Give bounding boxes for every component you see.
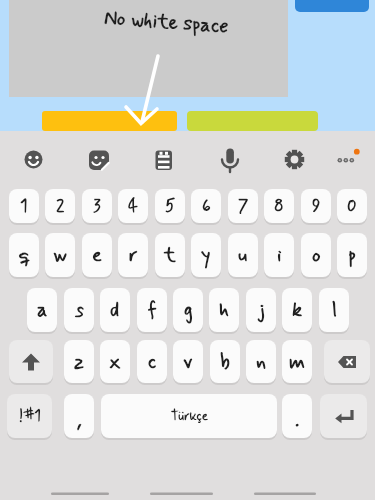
button[interactable]: m xyxy=(282,340,312,383)
button[interactable]: a xyxy=(27,288,57,332)
staticText: p xyxy=(348,242,357,268)
button[interactable]: !#1 xyxy=(7,394,52,438)
staticText: Türkçe xyxy=(171,408,208,424)
button[interactable]: f xyxy=(137,288,167,332)
button[interactable]: y xyxy=(191,233,221,277)
button[interactable]: u xyxy=(228,233,258,277)
button[interactable] xyxy=(320,394,367,438)
button[interactable]: e xyxy=(82,233,112,277)
button[interactable]: 5 xyxy=(155,189,185,223)
staticText: i xyxy=(277,242,282,268)
staticText: 2 xyxy=(56,195,65,217)
staticText: s xyxy=(75,297,84,323)
button[interactable]: n xyxy=(246,340,276,383)
staticText: g xyxy=(184,297,193,323)
staticText: c xyxy=(148,349,157,375)
staticText: z xyxy=(74,349,84,375)
button[interactable]: h xyxy=(209,288,239,332)
button[interactable]: d xyxy=(100,288,130,332)
staticText: No white space xyxy=(103,5,230,39)
button[interactable] xyxy=(9,340,53,383)
button[interactable]: 6 xyxy=(191,189,221,223)
staticText: j xyxy=(258,297,265,323)
button[interactable]: 3 xyxy=(82,189,112,223)
staticText: e xyxy=(92,242,102,268)
staticText: , xyxy=(77,406,82,434)
staticText: m xyxy=(289,349,305,375)
staticText: 9 xyxy=(312,195,321,217)
staticText: y xyxy=(201,242,211,268)
staticText: 7 xyxy=(238,195,249,217)
button[interactable]: s xyxy=(64,288,94,332)
staticText: r xyxy=(129,242,138,268)
staticText: b xyxy=(220,349,230,375)
staticText: 6 xyxy=(202,195,211,217)
button[interactable]: p xyxy=(337,233,367,277)
button[interactable]: , xyxy=(64,394,94,438)
button[interactable]: r xyxy=(118,233,148,277)
staticText: d xyxy=(110,297,120,323)
button[interactable]: 8 xyxy=(264,189,294,223)
staticText: !#1 xyxy=(19,406,41,426)
button[interactable]: Türkçe xyxy=(101,394,277,438)
button[interactable]: 7 xyxy=(228,189,258,223)
button[interactable]: q xyxy=(9,233,39,277)
staticText: 0 xyxy=(347,195,357,217)
button[interactable]: l xyxy=(319,288,349,332)
button[interactable]: c xyxy=(137,340,167,383)
staticText: h xyxy=(219,297,229,323)
staticText: 8 xyxy=(274,195,284,217)
button[interactable] xyxy=(324,340,370,383)
staticText: 4 xyxy=(128,195,138,217)
button[interactable]: . xyxy=(282,394,312,438)
staticText: l xyxy=(332,297,337,323)
button[interactable]: x xyxy=(100,340,130,383)
button[interactable]: k xyxy=(282,288,312,332)
staticText: x xyxy=(109,349,121,375)
staticText: k xyxy=(292,297,303,323)
staticText: v xyxy=(183,349,193,375)
staticText: 1 xyxy=(20,195,28,217)
button[interactable]: w xyxy=(45,233,75,277)
staticText: . xyxy=(295,406,300,434)
staticText: u xyxy=(238,242,248,268)
button[interactable]: g xyxy=(173,288,203,332)
button[interactable]: v xyxy=(173,340,203,383)
staticText: a xyxy=(37,297,48,323)
button[interactable]: o xyxy=(301,233,331,277)
button[interactable]: b xyxy=(210,340,240,383)
staticText: t xyxy=(164,242,176,268)
button[interactable]: 4 xyxy=(118,189,148,223)
button[interactable]: 2 xyxy=(45,189,75,223)
button[interactable]: 1 xyxy=(9,189,39,223)
staticText: o xyxy=(312,242,321,268)
staticText: 5 xyxy=(165,195,176,217)
button[interactable]: i xyxy=(264,233,294,277)
staticText: q xyxy=(19,242,30,268)
button[interactable]: j xyxy=(246,288,276,332)
button[interactable]: 9 xyxy=(301,189,331,223)
staticText: f xyxy=(148,297,157,323)
button[interactable]: z xyxy=(64,340,94,383)
button[interactable]: t xyxy=(155,233,185,277)
button[interactable]: 0 xyxy=(337,189,367,223)
staticText: w xyxy=(53,242,67,268)
staticText: n xyxy=(256,349,267,375)
staticText: 3 xyxy=(93,195,101,217)
